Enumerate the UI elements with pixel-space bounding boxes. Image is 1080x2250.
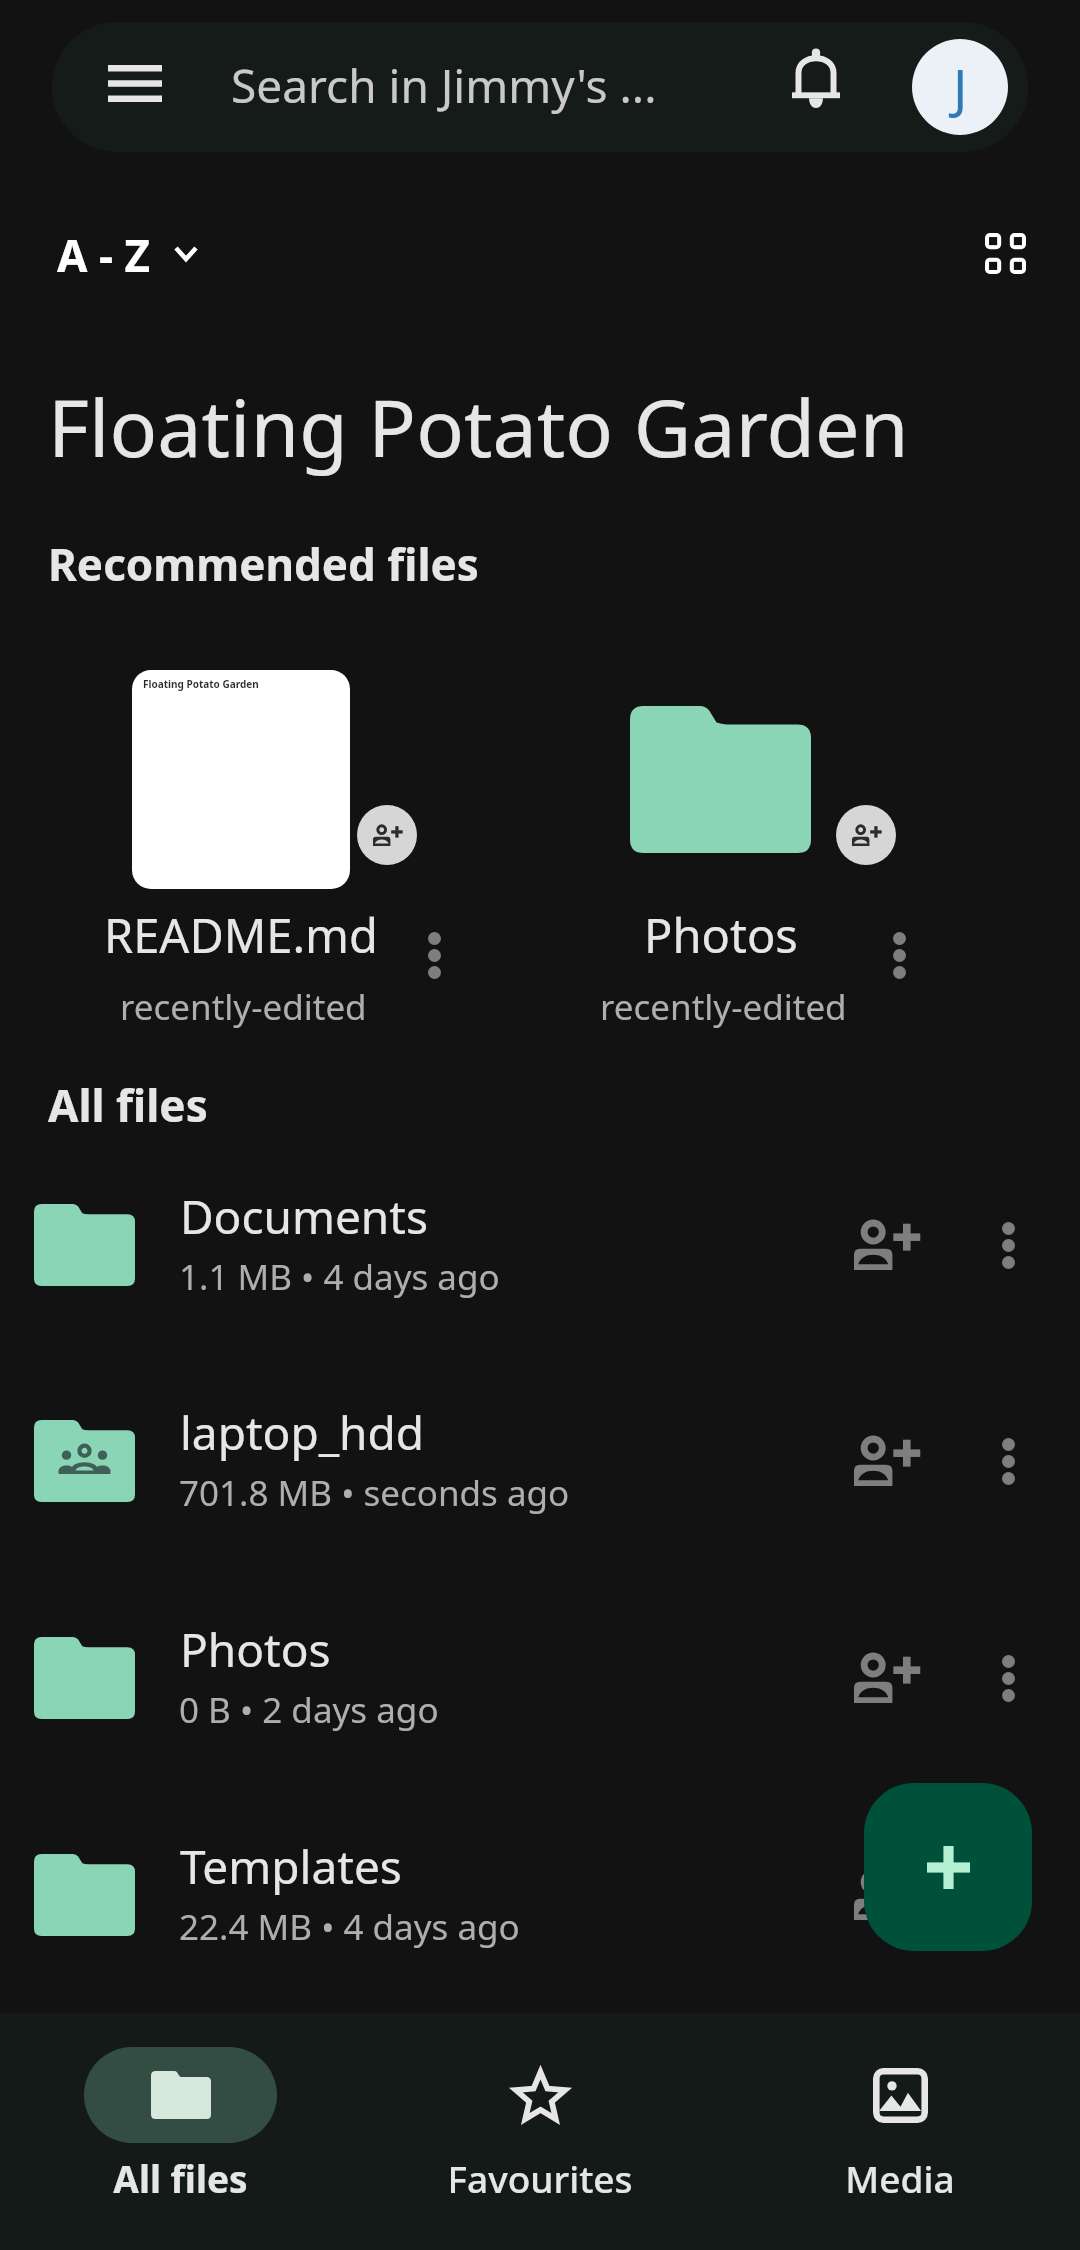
button[interactable]: Media (790, 2013, 1010, 2213)
staticText: Photos (180, 1618, 331, 1681)
button[interactable]: Notifications (766, 29, 866, 129)
staticText: Templates (180, 1835, 402, 1898)
button[interactable]: Menu (52, 22, 1028, 152)
button[interactable]: Photos folder (630, 706, 811, 853)
staticText: Search in Jimmy's ... (231, 54, 657, 117)
button[interactable]: More options (978, 1855, 1038, 1935)
button[interactable]: More options (978, 1205, 1038, 1285)
button[interactable]: Share (836, 1411, 936, 1511)
button[interactable]: laptop_hdd (0, 1353, 1080, 1569)
staticText: A - Z (57, 225, 150, 285)
button[interactable]: A - Z (41, 222, 210, 288)
staticText: All files (48, 1075, 208, 1135)
staticText: 1.1 MB • 4 days ago (179, 1253, 500, 1301)
button[interactable]: Documents (0, 1137, 1080, 1353)
button[interactable]: Share (357, 805, 417, 865)
staticText: All files (113, 2153, 248, 2203)
button[interactable]: Share (836, 1195, 936, 1295)
button[interactable]: Create new (864, 1783, 1032, 1951)
staticText: README.md (104, 903, 378, 967)
button[interactable]: More options (978, 1638, 1038, 1718)
button[interactable]: More options (404, 915, 464, 995)
button[interactable]: Share (836, 805, 896, 865)
button[interactable]: More options (869, 915, 929, 995)
staticText: laptop_hdd (180, 1401, 425, 1464)
staticText: J (953, 51, 968, 123)
button[interactable]: Switch to grid view (955, 203, 1055, 303)
staticText: Recommended files (48, 534, 479, 594)
button[interactable]: Favourites (430, 2013, 650, 2213)
button[interactable]: Photos (0, 1570, 1080, 1786)
button[interactable]: Share (836, 1845, 936, 1945)
button[interactable]: More options (978, 1421, 1038, 1501)
staticText: recently-edited (120, 983, 367, 1031)
staticText: Photos (644, 903, 798, 967)
staticText: Floating Potato Garden (48, 373, 909, 481)
staticText: 701.8 MB • seconds ago (179, 1469, 570, 1517)
button[interactable]: Templates (0, 1787, 1080, 2003)
staticText: recently-edited (600, 983, 847, 1031)
button[interactable]: All files (70, 2013, 290, 2213)
button[interactable]: Share (836, 1628, 936, 1728)
button[interactable]: Floating Potato Garden (132, 670, 350, 889)
staticText: Documents (180, 1185, 428, 1248)
staticText: Favourites (447, 2153, 633, 2203)
staticText: Floating Potato Garden (143, 677, 259, 691)
staticText: Media (845, 2153, 955, 2203)
staticText: 0 B • 2 days ago (179, 1686, 439, 1734)
button[interactable]: Account (912, 39, 1008, 135)
staticText: 22.4 MB • 4 days ago (179, 1903, 520, 1951)
button[interactable]: Menu (85, 33, 185, 133)
